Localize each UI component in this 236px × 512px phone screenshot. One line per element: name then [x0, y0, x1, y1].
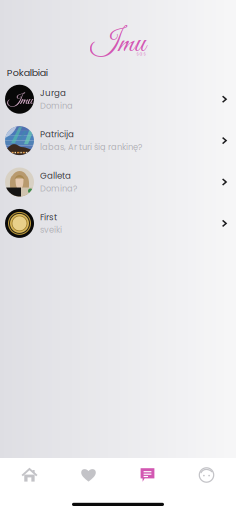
staticText: Patricija: [40, 128, 74, 140]
button[interactable]: Profile: [177, 467, 236, 482]
staticText: sveiki: [40, 224, 62, 236]
staticText: Imu: [90, 25, 145, 63]
button[interactable]: Messages: [118, 468, 177, 482]
staticText: Domina: [40, 100, 73, 112]
staticText: labas, Ar turi šią rankinę?: [40, 141, 142, 153]
button[interactable]: Favorites: [59, 468, 118, 482]
button[interactable]: Patricija: [0, 120, 236, 161]
staticText: Pokalbiai: [7, 66, 48, 79]
button[interactable]: Home: [0, 468, 59, 482]
staticText: First: [40, 211, 57, 223]
button[interactable]: First: [0, 203, 236, 244]
staticText: Galleta: [40, 170, 71, 182]
button[interactable]: Imu: [0, 78, 236, 120]
button[interactable]: Galleta: [0, 161, 236, 203]
staticText: Domina?: [40, 183, 77, 194]
staticText: Jurga: [40, 87, 66, 99]
staticText: s a s: [136, 51, 145, 57]
staticText: Imu: [7, 91, 32, 110]
